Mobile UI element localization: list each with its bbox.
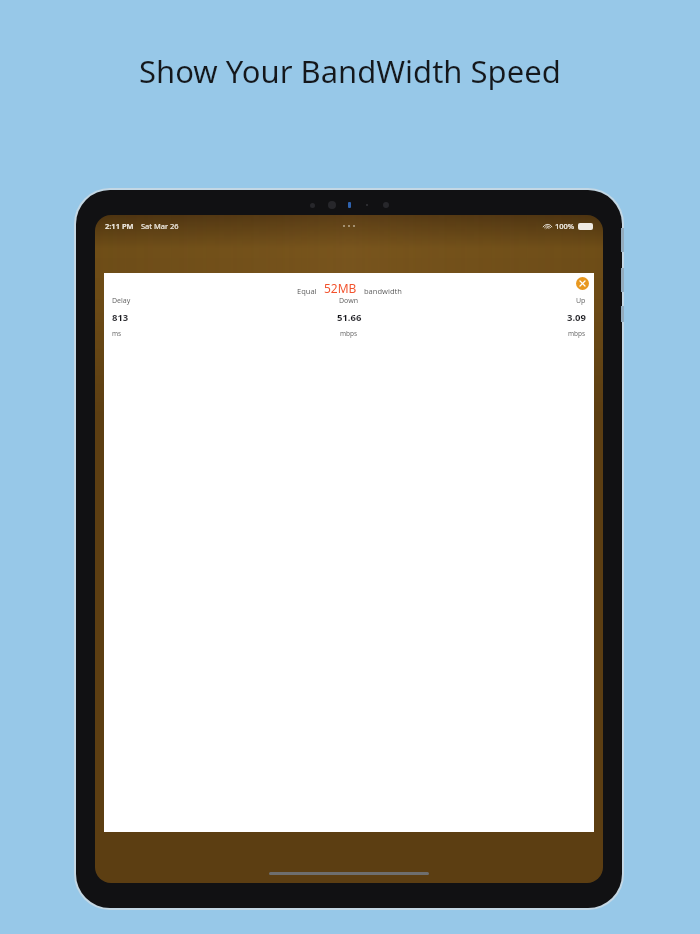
staticText: Delay [112, 296, 131, 306]
button[interactable]: Down [270, 296, 428, 338]
staticText: mbps [568, 329, 586, 338]
staticText: 813 [112, 311, 129, 324]
button[interactable]: Close [576, 277, 589, 290]
button[interactable]: Delay [112, 296, 270, 338]
staticText: 2:11 PM [105, 221, 134, 231]
staticText: bandwidth [364, 286, 402, 296]
staticText: Equal [297, 286, 317, 296]
staticText: Show Your BandWidth Speed [139, 50, 561, 92]
staticText: 52MB [324, 280, 357, 296]
staticText: mbps [340, 329, 358, 338]
staticText: ms [112, 329, 122, 338]
staticText: Up [576, 296, 586, 306]
staticText: 51.66 [337, 311, 362, 324]
button[interactable]: Up [428, 296, 586, 338]
staticText: Down [339, 296, 359, 306]
staticText: 100% [555, 221, 575, 231]
staticText: Sat Mar 26 [141, 221, 179, 231]
staticText: 3.09 [567, 311, 586, 324]
